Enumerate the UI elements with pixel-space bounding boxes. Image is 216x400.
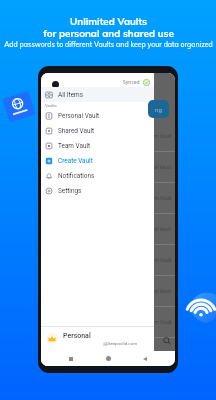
staticText: Synced: [123, 79, 140, 86]
button[interactable]: Create Vault: [41, 153, 154, 168]
staticText: Create Vault: [58, 157, 93, 165]
button[interactable]: Shared Vault: [41, 123, 154, 138]
staticText: al Vault: [154, 164, 172, 171]
staticText: Notifications: [58, 172, 95, 180]
staticText: m Vault: [154, 257, 172, 264]
staticText: for personal and shared use: [43, 27, 174, 39]
staticText: Unlimited Vaults: [70, 15, 147, 27]
staticText: al Vault: [154, 350, 172, 357]
staticText: ng: [155, 106, 162, 113]
button[interactable]: Settings: [41, 183, 154, 198]
staticText: Add passwords to different Vaults and ke…: [4, 40, 213, 49]
button[interactable]: Personal: [41, 327, 154, 351]
staticText: m Vault: [154, 319, 172, 326]
staticText: m Vault: [154, 133, 172, 140]
button[interactable]: All Items: [41, 87, 154, 102]
staticText: Personal: [63, 332, 91, 340]
other: Search: [163, 337, 171, 345]
staticText: j@keepsolid.com: [63, 341, 137, 346]
staticText: m Vault: [154, 195, 172, 202]
staticText: Shared Vault: [58, 127, 95, 135]
staticText: al Vault: [154, 226, 172, 233]
staticText: Settings: [58, 187, 82, 195]
button[interactable]: Notifications: [41, 168, 154, 183]
button[interactable]: Team Vault: [41, 138, 154, 153]
staticText: Vaults: [45, 103, 57, 108]
staticText: Personal Vault: [58, 112, 100, 120]
staticText: All Items: [58, 91, 83, 99]
staticText: al Vault: [154, 288, 172, 295]
button[interactable]: Personal Vault: [41, 108, 154, 123]
staticText: Team Vault: [58, 142, 91, 150]
